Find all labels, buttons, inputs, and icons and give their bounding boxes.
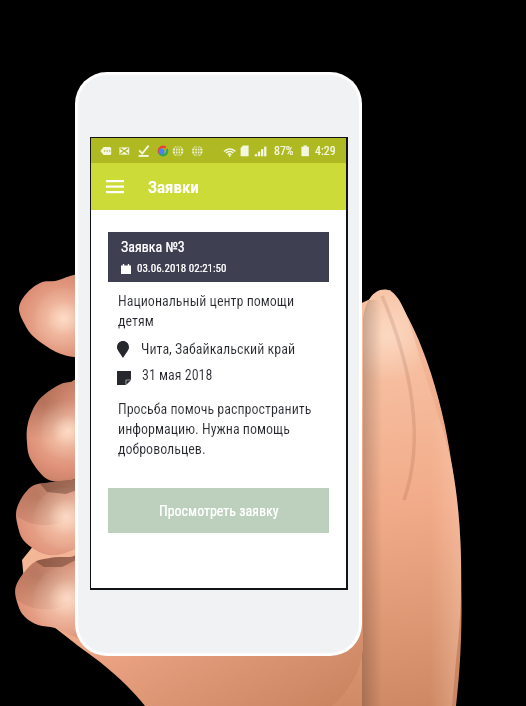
button[interactable]: Menu (98, 163, 132, 210)
staticText: Заявки (148, 177, 199, 197)
staticText: Заявка №3 (121, 239, 185, 255)
staticText: 4:29 (315, 144, 336, 158)
staticText: 31 мая 2018 (142, 367, 213, 383)
button[interactable]: Просмотреть заявку (108, 488, 329, 533)
staticText: 87% (274, 144, 294, 158)
staticText: Национальный центр помощи детям (118, 293, 319, 330)
staticText: Просьба помочь распространить информацию… (118, 401, 321, 457)
staticText: 03.06.2018 02:21:50 (137, 262, 227, 275)
staticText: Просмотреть заявку (159, 503, 279, 519)
staticText: Чита, Забайкальский край (141, 341, 296, 357)
